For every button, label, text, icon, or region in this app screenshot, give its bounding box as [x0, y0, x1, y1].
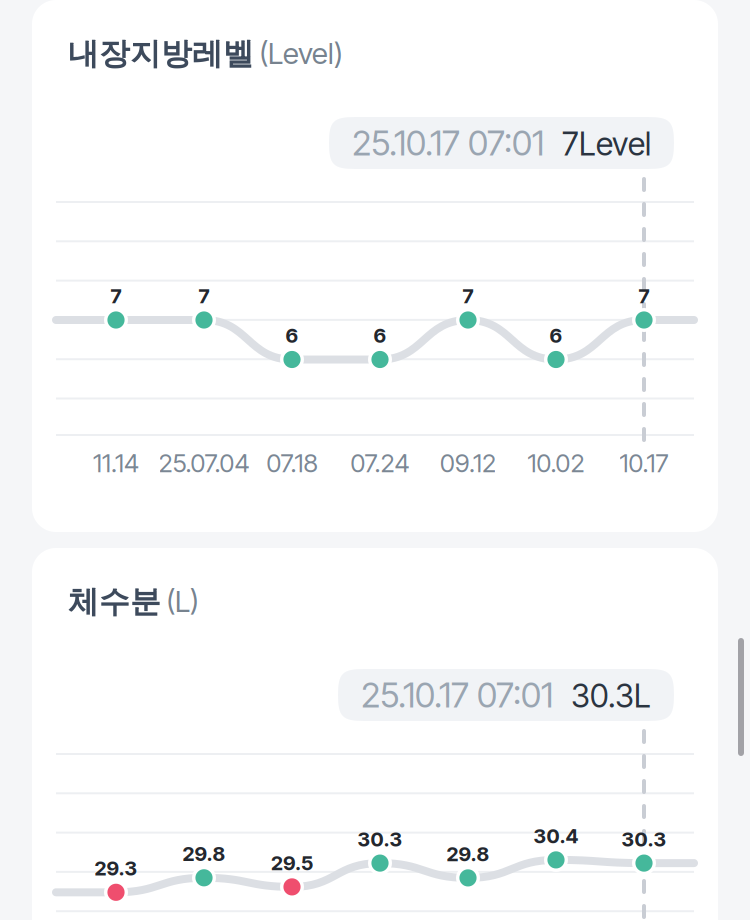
staticText: 30.3: [357, 827, 402, 851]
staticText: 29.8: [182, 842, 225, 866]
staticText: 체수분: [68, 583, 161, 621]
staticText: 6: [373, 323, 386, 348]
staticText: 6: [285, 323, 298, 348]
staticText: 10.17: [619, 448, 668, 478]
staticText: 29.3: [94, 856, 137, 880]
staticText: 25.10.17 07:01: [361, 674, 553, 716]
staticText: 7: [462, 284, 473, 308]
staticText: 6: [549, 323, 562, 348]
staticText: 7: [198, 284, 209, 308]
staticText: 25.10.17 07:01: [352, 122, 544, 164]
staticText: 07.24: [350, 448, 409, 478]
staticText: 7: [638, 284, 649, 308]
staticText: 내장지방레벨: [68, 35, 254, 73]
staticText: 10.02: [527, 448, 584, 478]
staticText: 25.07.04: [158, 448, 249, 478]
staticText: 7Level: [562, 125, 651, 163]
staticText: 30.3: [621, 827, 666, 851]
staticText: (Level): [259, 36, 343, 71]
staticText: 07.18: [266, 448, 317, 478]
staticText: 29.8: [446, 842, 489, 866]
staticText: 30.4: [533, 824, 578, 848]
staticText: (L): [166, 584, 199, 619]
staticText: 29.5: [271, 851, 313, 875]
staticText: 7: [110, 284, 121, 308]
staticText: 11.14: [93, 448, 139, 478]
staticText: 30.3L: [571, 677, 651, 715]
staticText: 09.12: [440, 448, 496, 478]
